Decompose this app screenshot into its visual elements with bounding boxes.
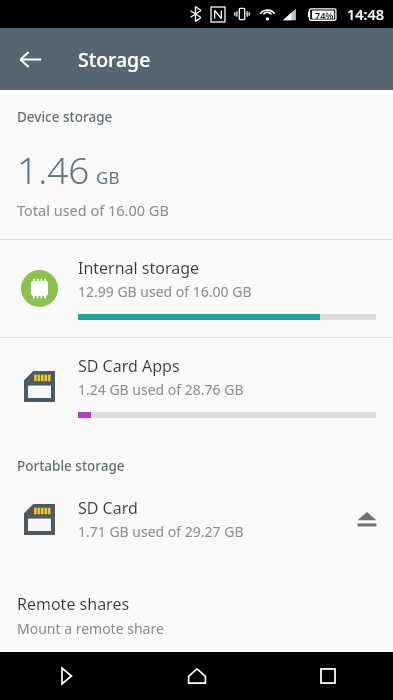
button[interactable]: SD Card Apps (0, 338, 393, 435)
button[interactable]: Recent apps (262, 652, 393, 700)
staticText: Device storage (17, 108, 113, 126)
staticText: Remote shares (17, 593, 130, 615)
staticText: Total used of 16.00 GB (17, 200, 169, 220)
staticText: SD Card Apps (78, 355, 180, 377)
staticText: 14:48 (347, 4, 385, 24)
button[interactable]: SD Card (0, 490, 393, 548)
staticText: 1.24 GB used of 28.76 GB (78, 380, 244, 399)
staticText: 74% (315, 9, 334, 21)
staticText: 12.99 GB used of 16.00 GB (78, 282, 252, 301)
button[interactable]: Eject SD Card (341, 493, 393, 545)
button[interactable]: Internal storage (0, 240, 393, 337)
staticText: Portable storage (17, 457, 125, 475)
button[interactable]: Back (6, 35, 54, 83)
button[interactable]: Remote shares (0, 593, 393, 638)
staticText: Internal storage (78, 257, 200, 279)
staticText: Storage (78, 46, 151, 73)
staticText: 1.71 GB used of 29.27 GB (78, 522, 244, 541)
staticText: 1.46 (17, 144, 90, 194)
button[interactable]: Back (0, 652, 131, 700)
staticText: GB (96, 166, 120, 189)
button[interactable]: Home (131, 652, 262, 700)
staticText: Mount a remote share (17, 619, 164, 638)
staticText: SD Card (78, 497, 138, 519)
